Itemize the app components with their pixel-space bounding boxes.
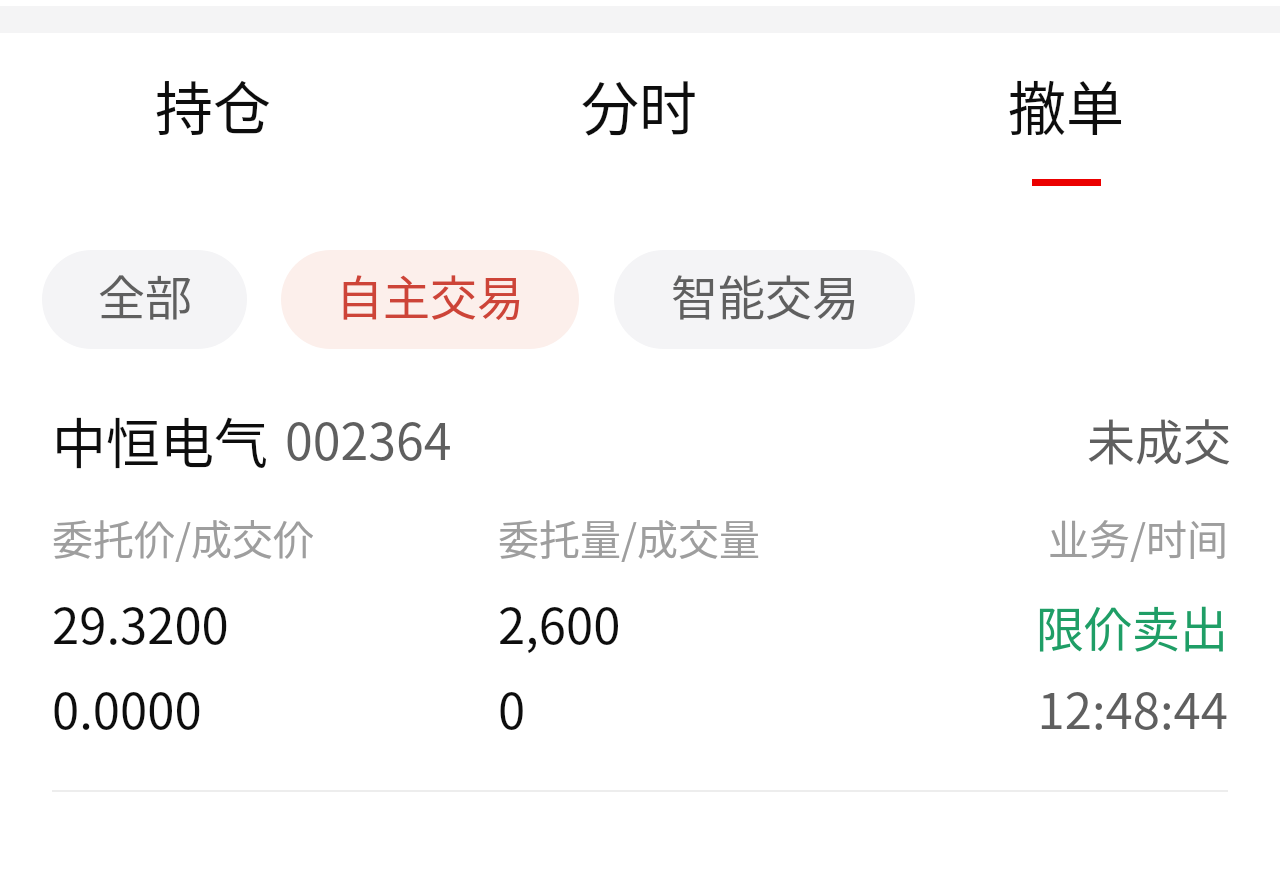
staticText: 12:48:44	[0, 672, 1228, 743]
staticText: 全部	[98, 260, 192, 328]
staticText: 29.3200	[52, 587, 229, 658]
button[interactable]: 分时	[426, 63, 853, 263]
button[interactable]: 全部	[42, 250, 247, 349]
staticText: 0.0000	[52, 672, 202, 743]
staticText: 持仓	[155, 63, 272, 147]
staticText: 限价卖出	[0, 591, 1228, 661]
button[interactable]: 撤单	[853, 63, 1280, 263]
button[interactable]: 智能交易	[614, 250, 915, 349]
staticText: 委托价/成交价	[52, 507, 315, 566]
staticText: 未成交	[1087, 404, 1232, 474]
staticText: 002364	[285, 402, 452, 474]
staticText: 智能交易	[671, 260, 859, 328]
button[interactable]: 自主交易	[281, 250, 579, 349]
staticText: 委托量/成交量	[498, 507, 761, 566]
staticText: 撤单	[1008, 63, 1125, 147]
staticText: 中恒电气	[52, 401, 268, 479]
staticText: 2,600	[498, 587, 621, 658]
staticText: 0	[498, 672, 526, 743]
staticText: 分时	[581, 63, 698, 147]
staticText: 自主交易	[336, 260, 524, 328]
button[interactable]: 中恒电气	[0, 380, 1280, 792]
staticText: 业务/时间	[0, 507, 1228, 566]
button[interactable]: 持仓	[0, 63, 426, 263]
